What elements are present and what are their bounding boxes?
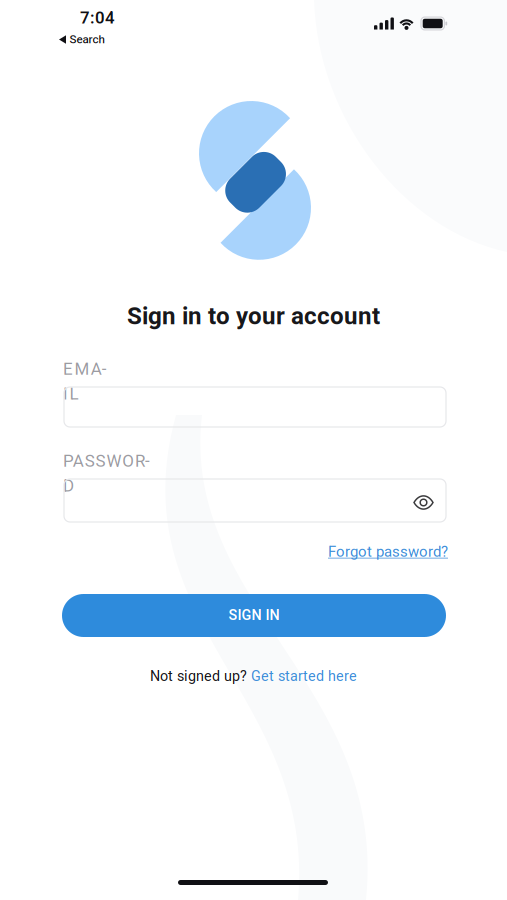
staticText: PASSWORD [63,449,150,499]
button[interactable]: Forgot password? [328,541,448,563]
button[interactable]: Search [57,29,106,50]
staticText: Forgot password? [328,541,448,563]
staticText: 7:04 [80,6,115,31]
staticText: Search [69,31,104,48]
button[interactable]: Get started here [251,666,357,687]
button[interactable]: SIGN IN [62,594,446,637]
staticText: Not signed up? [150,666,251,687]
staticText: Sign in to your account [127,299,380,334]
staticText: EMAIL [63,357,113,407]
staticText: Get started here [251,666,357,687]
staticText: SIGN IN [228,605,279,626]
button[interactable]: Show password [406,488,441,517]
